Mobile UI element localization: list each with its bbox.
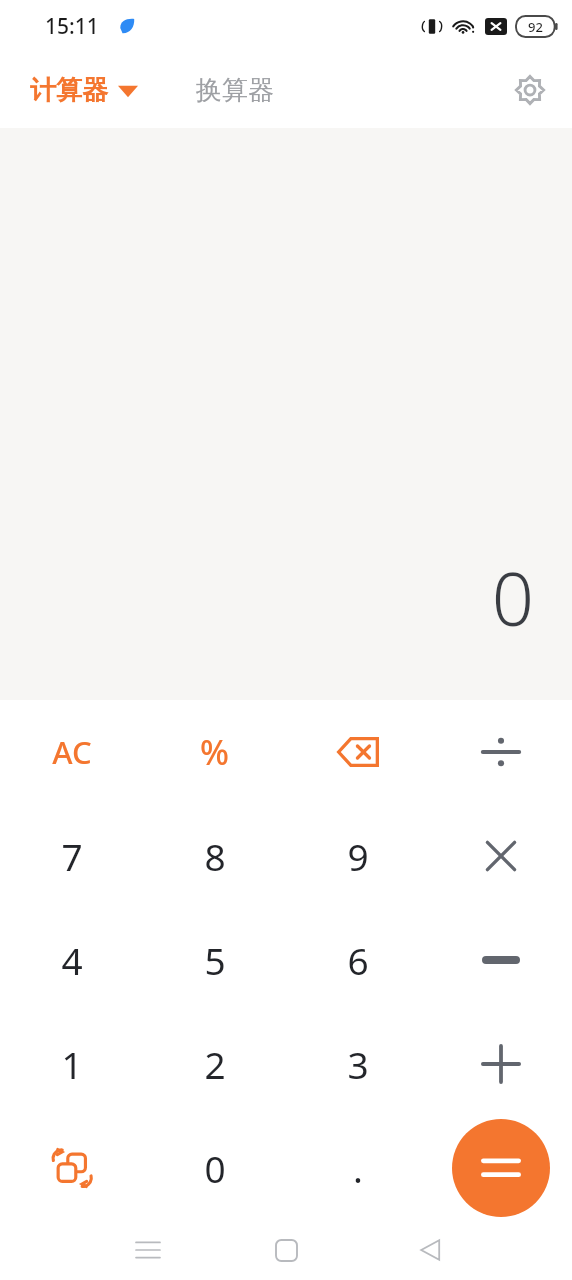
staticText: 0: [491, 547, 534, 648]
button[interactable]: Minus: [429, 908, 572, 1012]
button[interactable]: Home: [256, 1220, 316, 1280]
button[interactable]: 6: [286, 908, 429, 1012]
staticText: %: [200, 729, 229, 775]
staticText: 8: [204, 831, 226, 881]
button[interactable]: 9: [286, 804, 429, 908]
button[interactable]: 0: [143, 1116, 286, 1220]
button[interactable]: Backspace: [286, 700, 429, 804]
staticText: 6: [347, 935, 369, 985]
staticText: .: [353, 1143, 363, 1193]
button[interactable]: Multiply: [429, 804, 572, 908]
button[interactable]: %: [143, 700, 286, 804]
staticText: AC: [52, 731, 92, 773]
button[interactable]: 5: [143, 908, 286, 1012]
button[interactable]: Equals: [452, 1119, 550, 1217]
staticText: 3: [347, 1039, 369, 1089]
button[interactable]: 4: [0, 908, 143, 1012]
button[interactable]: Plus: [429, 1012, 572, 1116]
button[interactable]: AC: [0, 700, 143, 804]
button[interactable]: 换算器: [196, 74, 274, 107]
staticText: 计算器: [30, 74, 108, 107]
staticText: 1: [61, 1039, 83, 1089]
staticText: 0: [204, 1143, 226, 1193]
staticText: 92: [528, 18, 543, 36]
button[interactable]: 8: [143, 804, 286, 908]
button[interactable]: Convert units: [0, 1116, 143, 1220]
staticText: 换算器: [196, 74, 274, 107]
staticText: 7: [61, 831, 83, 881]
staticText: 5: [204, 935, 226, 985]
button[interactable]: 计算器: [30, 74, 138, 107]
button[interactable]: Back: [400, 1220, 460, 1280]
staticText: 2: [204, 1039, 226, 1089]
button[interactable]: Divide: [429, 700, 572, 804]
staticText: 4: [61, 935, 83, 985]
button[interactable]: 1: [0, 1012, 143, 1116]
button[interactable]: 2: [143, 1012, 286, 1116]
staticText: 9: [347, 831, 369, 881]
button[interactable]: Settings: [508, 68, 552, 112]
button[interactable]: .: [286, 1116, 429, 1220]
button[interactable]: 3: [286, 1012, 429, 1116]
button[interactable]: Recent apps: [118, 1220, 178, 1280]
staticText: 15:11: [45, 12, 99, 41]
button[interactable]: 7: [0, 804, 143, 908]
